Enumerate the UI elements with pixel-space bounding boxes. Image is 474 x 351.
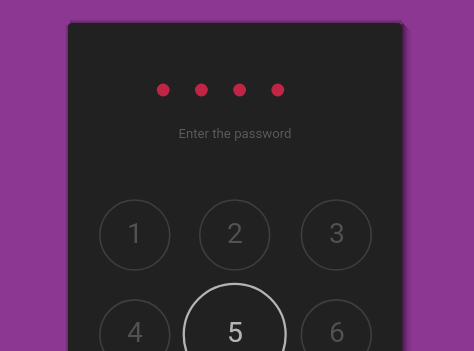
button[interactable]: 5 — [183, 283, 287, 351]
staticText: 1 — [127, 217, 143, 250]
staticText: 3 — [329, 217, 345, 250]
staticText: 2 — [227, 217, 243, 250]
button[interactable]: 1 — [99, 199, 171, 271]
button[interactable]: 6 — [301, 299, 373, 351]
staticText: Enter the password — [178, 126, 292, 141]
button[interactable]: 2 — [199, 199, 271, 271]
button[interactable]: 3 — [301, 199, 373, 271]
staticText: 6 — [329, 316, 345, 349]
staticText: 4 — [127, 316, 143, 349]
staticText: 5 — [227, 316, 243, 349]
button[interactable]: 4 — [99, 299, 171, 351]
